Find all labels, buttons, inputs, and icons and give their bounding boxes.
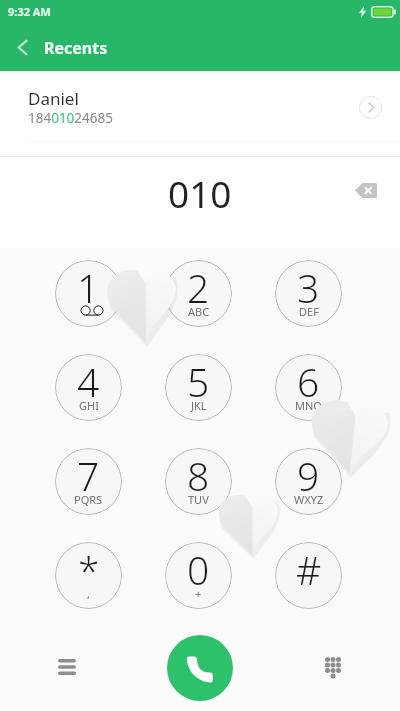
staticText: 5 xyxy=(187,355,210,408)
staticText: MNO xyxy=(295,398,322,413)
staticText: Daniel xyxy=(28,87,79,110)
button[interactable]: * xyxy=(55,542,122,609)
button[interactable]: Daniel xyxy=(0,71,400,157)
staticText: 18401024685 xyxy=(28,109,113,127)
button[interactable]: Call log menu xyxy=(47,647,87,687)
staticText: 010 xyxy=(168,168,232,218)
staticText: 9 xyxy=(297,449,320,502)
button[interactable]: 6 xyxy=(275,354,342,421)
button[interactable]: Backspace xyxy=(346,170,386,210)
staticText: PQRS xyxy=(74,492,103,507)
button[interactable]: 2 xyxy=(165,260,232,327)
staticText: # xyxy=(296,543,322,596)
button[interactable]: 0 xyxy=(165,542,232,609)
staticText: GHI xyxy=(79,398,99,413)
staticText: ABC xyxy=(188,304,210,319)
staticText: 8 xyxy=(187,449,210,502)
button[interactable]: 4 xyxy=(55,354,122,421)
button[interactable]: 9 xyxy=(275,448,342,515)
staticText: 3 xyxy=(297,261,320,314)
button[interactable]: 5 xyxy=(165,354,232,421)
staticText: 0 xyxy=(187,543,210,596)
staticText: 6 xyxy=(297,355,320,408)
staticText: , xyxy=(87,586,90,601)
button[interactable]: Back xyxy=(1,26,43,68)
staticText: TUV xyxy=(188,492,209,507)
button[interactable]: Call details xyxy=(352,89,388,125)
button[interactable]: # xyxy=(275,542,342,609)
staticText: * xyxy=(78,543,100,596)
button[interactable]: Call xyxy=(167,635,233,701)
staticText: JKL xyxy=(191,398,207,413)
staticText: + xyxy=(195,586,202,601)
staticText: DEF xyxy=(299,304,319,319)
button[interactable]: 1 xyxy=(55,260,122,327)
staticText: 4 xyxy=(77,355,100,408)
staticText: 7 xyxy=(77,449,100,502)
staticText: Recents xyxy=(44,37,108,59)
staticText: 2 xyxy=(187,261,210,314)
button[interactable]: 3 xyxy=(275,260,342,327)
staticText: 9:32 AM xyxy=(8,4,51,19)
staticText: 1 xyxy=(77,261,100,314)
button[interactable]: Dialpad xyxy=(313,647,353,687)
button[interactable]: 8 xyxy=(165,448,232,515)
staticText: WXYZ xyxy=(294,492,324,507)
button[interactable]: 7 xyxy=(55,448,122,515)
